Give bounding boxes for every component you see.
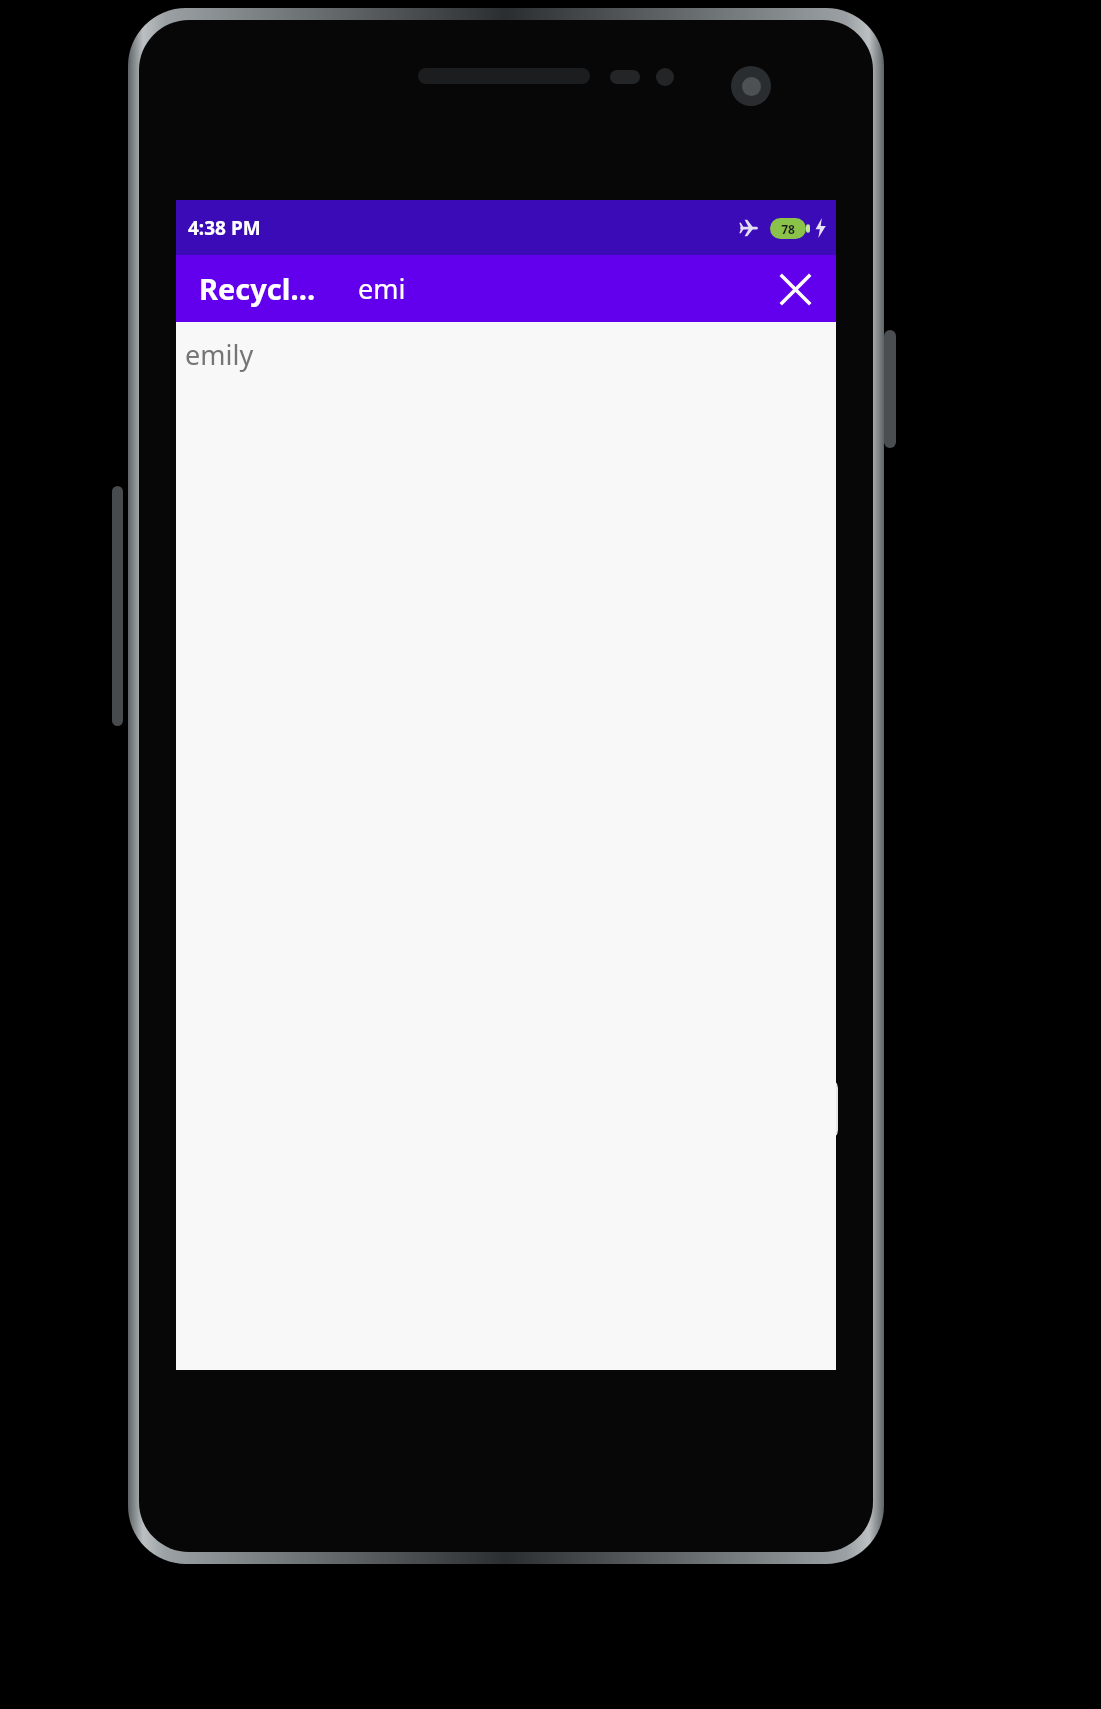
staticText: Recycl…: [199, 269, 316, 308]
staticText: 78: [781, 221, 795, 237]
staticText: 4:38 PM: [188, 215, 261, 241]
staticText: emi: [358, 270, 406, 307]
button[interactable]: emily: [176, 322, 836, 386]
button[interactable]: Close search: [762, 256, 828, 322]
staticText: emily: [185, 336, 254, 373]
